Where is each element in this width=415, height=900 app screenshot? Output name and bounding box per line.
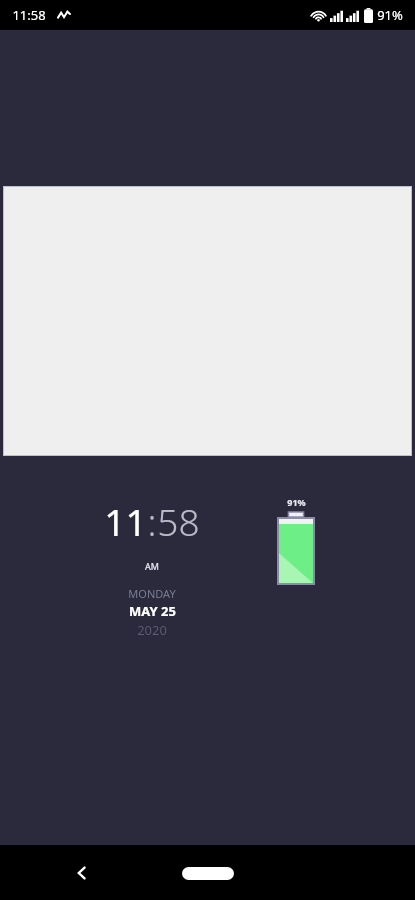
staticText: 58 (157, 496, 200, 546)
button[interactable]: Back (60, 851, 104, 895)
button[interactable]: Battery 91 percent (276, 512, 316, 584)
staticText: MONDAY (128, 586, 176, 601)
button[interactable]: Home (180, 862, 236, 884)
staticText: 11 (104, 496, 147, 546)
staticText: 91% (287, 496, 306, 508)
staticText: 2020 (137, 621, 167, 639)
staticText: : (147, 496, 157, 546)
staticText: 11:58 (12, 6, 46, 24)
staticText: MAY 25 (129, 602, 176, 620)
staticText: AM (145, 560, 159, 572)
staticText: 91% (377, 6, 403, 24)
